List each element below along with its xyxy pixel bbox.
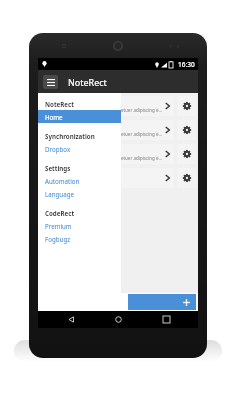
button[interactable]: Premium	[38, 219, 121, 232]
button[interactable]: Settings	[177, 168, 196, 188]
staticText: Lorem ipsum dolor sit amet, consectetuer…	[44, 155, 163, 161]
button[interactable]: Add note	[128, 294, 196, 310]
button[interactable]: Language	[38, 187, 121, 200]
staticText: Synchronization	[45, 132, 95, 140]
staticText: Settings	[45, 164, 71, 172]
button[interactable]: Open navigation drawer	[43, 75, 58, 89]
button[interactable]: Automation	[38, 174, 121, 187]
staticText: Fogbugz	[45, 235, 71, 243]
staticText: Lorem ipsum dolor sit amet, consectetuer…	[44, 131, 163, 137]
staticText: Lorem ipsum	[44, 147, 80, 154]
button[interactable]: Settings	[177, 96, 196, 116]
button[interactable]: Fogbugz	[38, 232, 121, 245]
staticText: Automation	[45, 177, 80, 185]
staticText: Dropbox	[45, 145, 71, 153]
button[interactable]: Home	[38, 110, 121, 123]
staticText: Home	[45, 113, 63, 121]
staticText: CodeRect	[45, 209, 75, 217]
staticText: Language	[45, 190, 74, 198]
staticText: Lorem ipsum dolor sit amet, consectetuer…	[44, 107, 163, 113]
staticText: 16:30	[178, 60, 195, 69]
button[interactable]: Home	[103, 311, 133, 328]
staticText: Lorem ipsum dolor sit amet, co...	[44, 179, 114, 185]
button[interactable]: Dropbox	[38, 142, 121, 155]
button[interactable]: Lorem ipsum	[40, 120, 174, 140]
staticText: NoteRect	[68, 76, 107, 88]
button[interactable]: Settings	[177, 120, 196, 140]
staticText: Lorem ipsum	[44, 171, 80, 178]
button[interactable]: Recent apps	[151, 311, 181, 328]
button[interactable]: Lorem ipsum	[40, 168, 174, 188]
staticText: NoteRect	[45, 100, 74, 108]
button[interactable]: Lorem ipsum ti	[40, 96, 174, 116]
button[interactable]: Back	[56, 311, 86, 328]
button[interactable]: Lorem ipsum	[40, 144, 174, 164]
button[interactable]: Settings	[177, 144, 196, 164]
staticText: Lorem ipsum ti	[44, 99, 86, 106]
staticText: Premium	[45, 222, 72, 230]
